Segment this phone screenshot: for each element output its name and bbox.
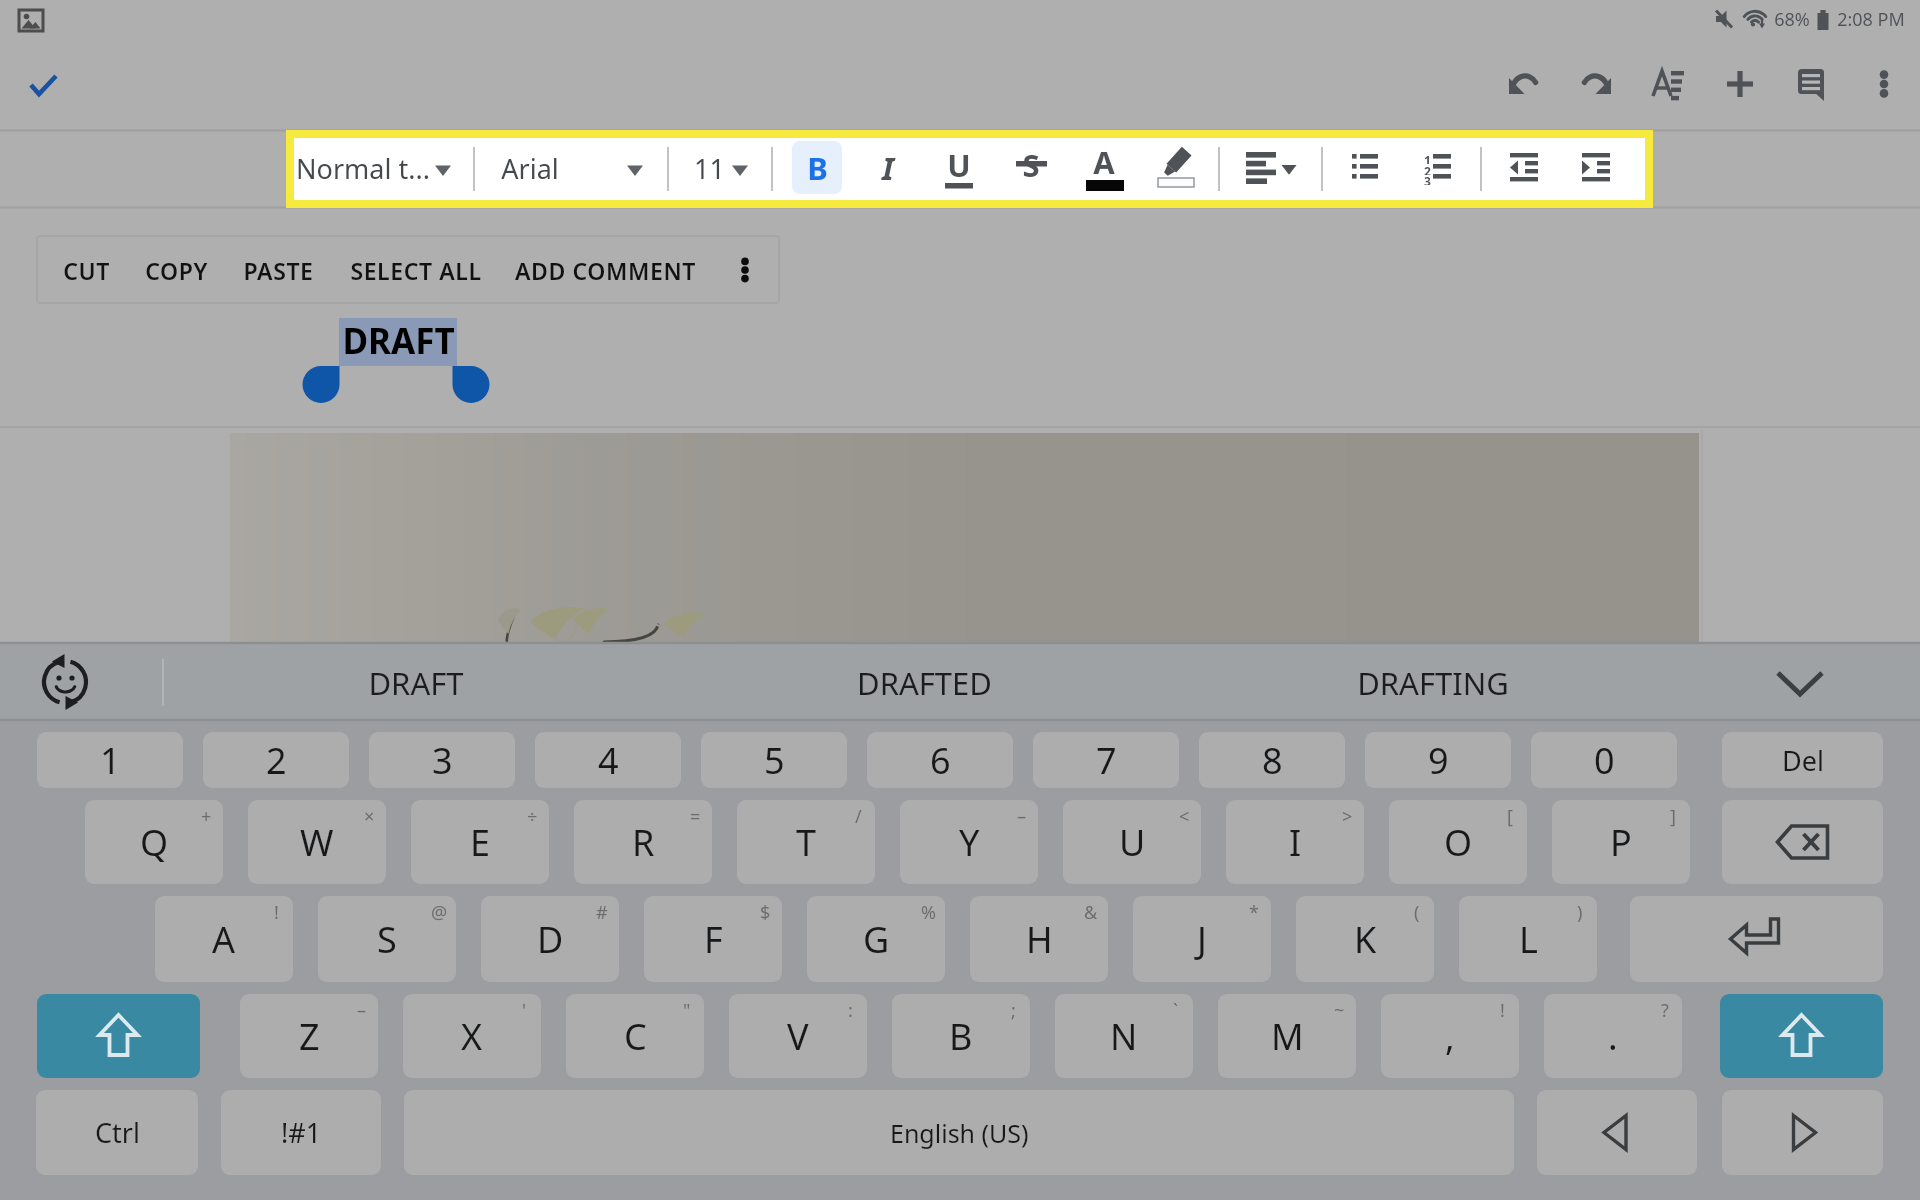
button[interactable]: 3 bbox=[369, 732, 515, 788]
button[interactable]: Comments bbox=[1777, 50, 1845, 118]
staticText: ; bbox=[1011, 998, 1016, 1023]
button[interactable]: F bbox=[644, 896, 782, 982]
staticText: 6 bbox=[930, 736, 951, 785]
button[interactable]: J bbox=[1133, 896, 1271, 982]
button[interactable]: DRAFT bbox=[251, 646, 581, 720]
staticText: ` bbox=[1173, 998, 1179, 1023]
button[interactable]: . bbox=[1544, 994, 1682, 1078]
button[interactable]: ADD COMMENT bbox=[505, 240, 705, 300]
button[interactable]: Insert bbox=[1706, 50, 1774, 118]
button[interactable]: I bbox=[1226, 800, 1364, 884]
button[interactable]: Done bbox=[10, 50, 78, 118]
button[interactable]: Shift bbox=[1720, 994, 1883, 1078]
button[interactable]: L bbox=[1459, 896, 1597, 982]
button[interactable]: Numbered list bbox=[1408, 139, 1466, 197]
button[interactable]: 8 bbox=[1199, 732, 1345, 788]
button[interactable]: K bbox=[1296, 896, 1434, 982]
button[interactable]: V bbox=[729, 994, 867, 1078]
staticText: 1 bbox=[1424, 152, 1431, 164]
button[interactable]: Y bbox=[900, 800, 1038, 884]
staticText: ÷ bbox=[527, 804, 538, 829]
button[interactable]: CUT bbox=[51, 240, 121, 300]
button[interactable]: DRAFTING bbox=[1268, 646, 1598, 720]
staticText: 2 bbox=[1424, 163, 1431, 175]
button[interactable]: Ctrl bbox=[36, 1090, 198, 1175]
button[interactable]: SELECT ALL bbox=[335, 240, 497, 300]
button[interactable]: Shift bbox=[37, 994, 200, 1078]
button[interactable]: G bbox=[807, 896, 945, 982]
staticText: , bbox=[1445, 1012, 1455, 1061]
button[interactable]: P bbox=[1552, 800, 1690, 884]
button[interactable]: 5 bbox=[701, 732, 847, 788]
button[interactable]: More bbox=[717, 242, 773, 298]
staticText: 3 bbox=[1424, 173, 1431, 185]
button[interactable]: M bbox=[1218, 994, 1356, 1078]
button[interactable]: U bbox=[934, 137, 984, 193]
button[interactable]: Normal t... bbox=[295, 139, 430, 197]
button[interactable]: 1 bbox=[37, 732, 183, 788]
button[interactable]: Highlight color bbox=[1149, 141, 1203, 195]
button[interactable]: Increase indent bbox=[1567, 139, 1625, 197]
staticText: U bbox=[1119, 818, 1146, 867]
button[interactable]: 6 bbox=[867, 732, 1013, 788]
button[interactable]: DRAFTED bbox=[759, 646, 1089, 720]
button[interactable]: A bbox=[1079, 134, 1129, 190]
button[interactable]: 2 bbox=[203, 732, 349, 788]
button[interactable]: More options bbox=[1850, 50, 1918, 118]
button[interactable]: 4 bbox=[535, 732, 681, 788]
staticText: DRAFT bbox=[342, 317, 455, 365]
button[interactable]: Bulleted list bbox=[1336, 139, 1394, 197]
staticText: * bbox=[1249, 900, 1259, 925]
staticText: Y bbox=[959, 818, 980, 867]
button[interactable]: B bbox=[892, 994, 1030, 1078]
button[interactable]: !#1 bbox=[221, 1090, 381, 1175]
button[interactable]: W bbox=[248, 800, 386, 884]
button[interactable]: 7 bbox=[1033, 732, 1179, 788]
staticText: Q bbox=[140, 818, 169, 867]
button[interactable]: Undo bbox=[1489, 50, 1557, 118]
button[interactable]: 0 bbox=[1531, 732, 1677, 788]
staticText: [ bbox=[1507, 804, 1513, 829]
staticText: 5 bbox=[764, 736, 785, 785]
button[interactable]: English (US) bbox=[404, 1090, 1514, 1175]
button[interactable]: U bbox=[1063, 800, 1201, 884]
button[interactable]: T bbox=[737, 800, 875, 884]
button[interactable]: , bbox=[1381, 994, 1519, 1078]
button[interactable]: Text formatting bbox=[1635, 50, 1703, 118]
button[interactable]: Q bbox=[85, 800, 223, 884]
button[interactable]: E bbox=[411, 800, 549, 884]
button[interactable]: 11 bbox=[684, 139, 734, 197]
button[interactable]: Inserted image bbox=[230, 433, 1699, 643]
button[interactable]: Left bbox=[1537, 1090, 1697, 1175]
button[interactable]: C bbox=[566, 994, 704, 1078]
button[interactable]: Redo bbox=[1563, 50, 1631, 118]
button[interactable]: Right bbox=[1722, 1090, 1883, 1175]
button[interactable]: Del bbox=[1722, 732, 1883, 788]
button[interactable]: 9 bbox=[1365, 732, 1511, 788]
button[interactable]: Alignment bbox=[1235, 137, 1297, 199]
button[interactable]: PASTE bbox=[228, 240, 328, 300]
button[interactable]: O bbox=[1389, 800, 1527, 884]
button[interactable]: Arial bbox=[482, 139, 577, 197]
staticText: DRAFTING bbox=[1357, 662, 1509, 704]
button[interactable]: N bbox=[1055, 994, 1193, 1078]
button[interactable]: Italic bbox=[863, 140, 913, 196]
button[interactable]: Enter bbox=[1630, 896, 1883, 982]
button[interactable]: S bbox=[1006, 137, 1056, 193]
staticText: COPY bbox=[145, 255, 208, 286]
button[interactable]: Z bbox=[240, 994, 378, 1078]
button[interactable]: Hide keyboard bbox=[1768, 650, 1832, 714]
button[interactable]: B bbox=[792, 141, 842, 195]
button[interactable]: X bbox=[403, 994, 541, 1078]
button[interactable]: S bbox=[318, 896, 456, 982]
button[interactable]: COPY bbox=[130, 240, 222, 300]
staticText: I bbox=[882, 147, 894, 189]
button[interactable]: Emoji bbox=[33, 650, 97, 714]
button[interactable]: Decrease indent bbox=[1495, 139, 1553, 197]
button[interactable]: H bbox=[970, 896, 1108, 982]
button[interactable]: R bbox=[574, 800, 712, 884]
staticText: S bbox=[377, 915, 397, 964]
button[interactable]: A bbox=[155, 896, 293, 982]
button[interactable]: D bbox=[481, 896, 619, 982]
button[interactable]: Backspace bbox=[1722, 800, 1883, 884]
